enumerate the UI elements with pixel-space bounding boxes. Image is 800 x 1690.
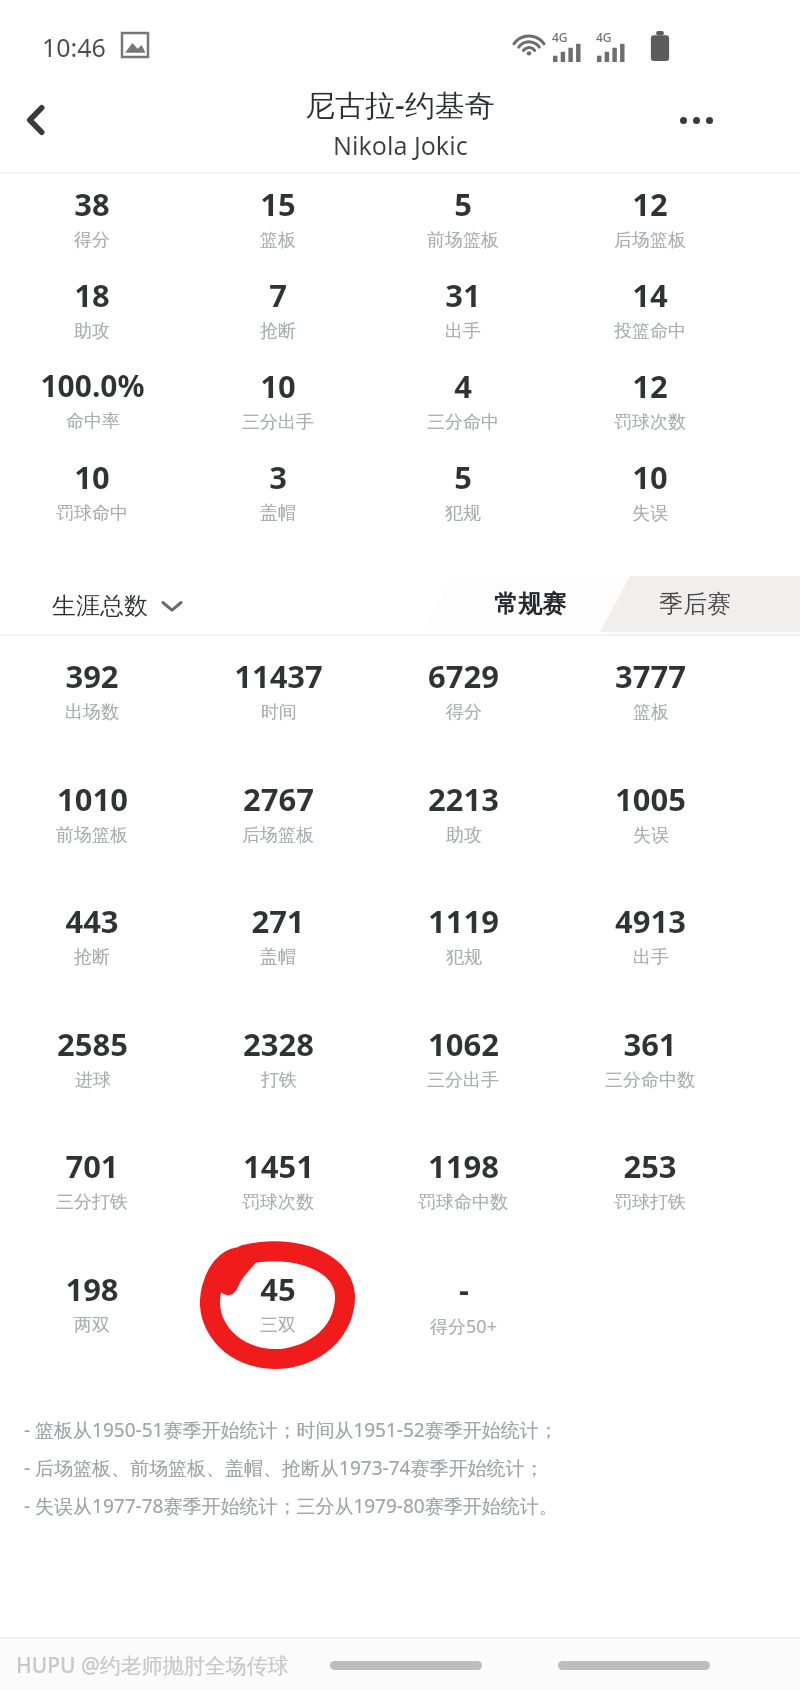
button[interactable]: 10 (183, 365, 373, 434)
staticText: - (459, 1268, 469, 1310)
staticText: 后场篮板 (242, 824, 314, 847)
button[interactable]: 1119 (368, 900, 558, 969)
button[interactable]: 31 (368, 274, 558, 343)
button[interactable]: 253 (555, 1145, 745, 1214)
staticText: 失误 (632, 502, 668, 525)
button[interactable]: 15 (183, 183, 373, 252)
staticText: 抢断 (260, 320, 296, 343)
staticText: 三分命中数 (605, 1069, 695, 1092)
staticText: 篮板 (633, 701, 669, 724)
staticText: 盖帽 (260, 946, 296, 969)
button[interactable]: 4 (368, 365, 558, 434)
button[interactable]: 18 (0, 274, 187, 343)
staticText: - 篮板从1950-51赛季开始统计；时间从1951-52赛季开始统计； (24, 1417, 558, 1443)
staticText: 5 (454, 456, 472, 498)
staticText: 2213 (428, 778, 499, 820)
staticText: 得分 (446, 701, 482, 724)
button[interactable]: 1451 (183, 1145, 373, 1214)
staticText: 1062 (428, 1023, 499, 1065)
staticText: 1119 (428, 900, 499, 942)
button[interactable]: 生涯总数 (52, 583, 184, 629)
staticText: 后场篮板 (614, 229, 686, 252)
button[interactable]: 701 (0, 1145, 187, 1214)
staticText: 443 (65, 900, 119, 942)
button[interactable]: 12 (555, 365, 745, 434)
staticText: 抢断 (74, 946, 110, 969)
staticText: 时间 (261, 701, 297, 724)
staticText: 392 (65, 655, 119, 697)
button[interactable]: 1005 (555, 778, 745, 847)
staticText: 361 (623, 1023, 677, 1065)
staticText: 15 (260, 183, 296, 225)
staticText: 100.0% (40, 365, 145, 406)
button[interactable]: 4913 (555, 900, 745, 969)
button[interactable]: More options (660, 90, 732, 150)
staticText: 罚球命中 (56, 502, 128, 525)
staticText: 出手 (445, 320, 481, 343)
button[interactable]: 45 (183, 1268, 373, 1337)
staticText: 4913 (615, 900, 686, 942)
staticText: 18 (74, 274, 110, 316)
staticText: 前场篮板 (427, 229, 499, 252)
button[interactable]: 2213 (368, 778, 558, 847)
button[interactable]: 198 (0, 1268, 187, 1337)
button[interactable]: 1010 (0, 778, 187, 847)
staticText: 失误 (633, 824, 669, 847)
button[interactable]: 10 (555, 456, 745, 525)
button[interactable]: 5 (368, 456, 558, 525)
staticText: 2328 (243, 1023, 314, 1065)
staticText: 38 (74, 183, 110, 225)
staticText: 罚球次数 (242, 1191, 314, 1214)
button[interactable]: 361 (555, 1023, 745, 1092)
staticText: 命中率 (66, 410, 120, 433)
staticText: 出手 (633, 946, 669, 969)
staticText: 6729 (428, 655, 499, 697)
staticText: 盖帽 (260, 502, 296, 525)
staticText: - 失误从1977-78赛季开始统计；三分从1979-80赛季开始统计。 (24, 1493, 558, 1519)
staticText: 10 (260, 365, 296, 407)
button[interactable]: 2767 (183, 778, 373, 847)
button[interactable]: 38 (0, 183, 187, 252)
staticText: 打铁 (261, 1069, 297, 1092)
staticText: 1010 (57, 778, 128, 820)
button[interactable]: 1062 (368, 1023, 558, 1092)
button[interactable]: 392 (0, 655, 187, 724)
button[interactable]: 1198 (368, 1145, 558, 1214)
staticText: 12 (632, 365, 668, 407)
staticText: 三分出手 (242, 411, 314, 434)
button[interactable]: 11437 (183, 655, 373, 724)
button[interactable]: 常规赛 (450, 576, 610, 632)
button[interactable]: 10 (0, 456, 187, 525)
button[interactable]: 6729 (368, 655, 558, 724)
button[interactable]: 7 (183, 274, 373, 343)
button[interactable]: 3777 (555, 655, 745, 724)
staticText: 1198 (428, 1145, 499, 1187)
staticText: 进球 (75, 1069, 111, 1092)
staticText: 701 (65, 1145, 119, 1187)
button[interactable]: 443 (0, 900, 187, 969)
staticText: 11437 (234, 655, 323, 697)
staticText: 7 (269, 274, 287, 316)
staticText: 3 (269, 456, 287, 498)
button[interactable]: 14 (555, 274, 745, 343)
button[interactable]: - (368, 1268, 558, 1339)
staticText: 1451 (243, 1145, 314, 1187)
staticText: 2767 (243, 778, 314, 820)
button[interactable]: 100.0% (0, 365, 187, 433)
button[interactable]: 2585 (0, 1023, 187, 1092)
button[interactable]: 5 (368, 183, 558, 252)
staticText: 生涯总数 (52, 591, 148, 621)
staticText: 尼古拉-约基奇 (305, 84, 495, 125)
button[interactable]: 271 (183, 900, 373, 969)
button[interactable]: 3 (183, 456, 373, 525)
button[interactable]: 12 (555, 183, 745, 252)
button[interactable]: 2328 (183, 1023, 373, 1092)
staticText: 投篮命中 (614, 320, 686, 343)
staticText: 5 (454, 183, 472, 225)
staticText: 198 (65, 1268, 119, 1310)
button[interactable]: Back (6, 90, 66, 150)
button[interactable]: 季后赛 (610, 576, 780, 632)
staticText: 10:46 (42, 30, 106, 64)
staticText: 犯规 (446, 946, 482, 969)
staticText: 季后赛 (659, 589, 731, 619)
